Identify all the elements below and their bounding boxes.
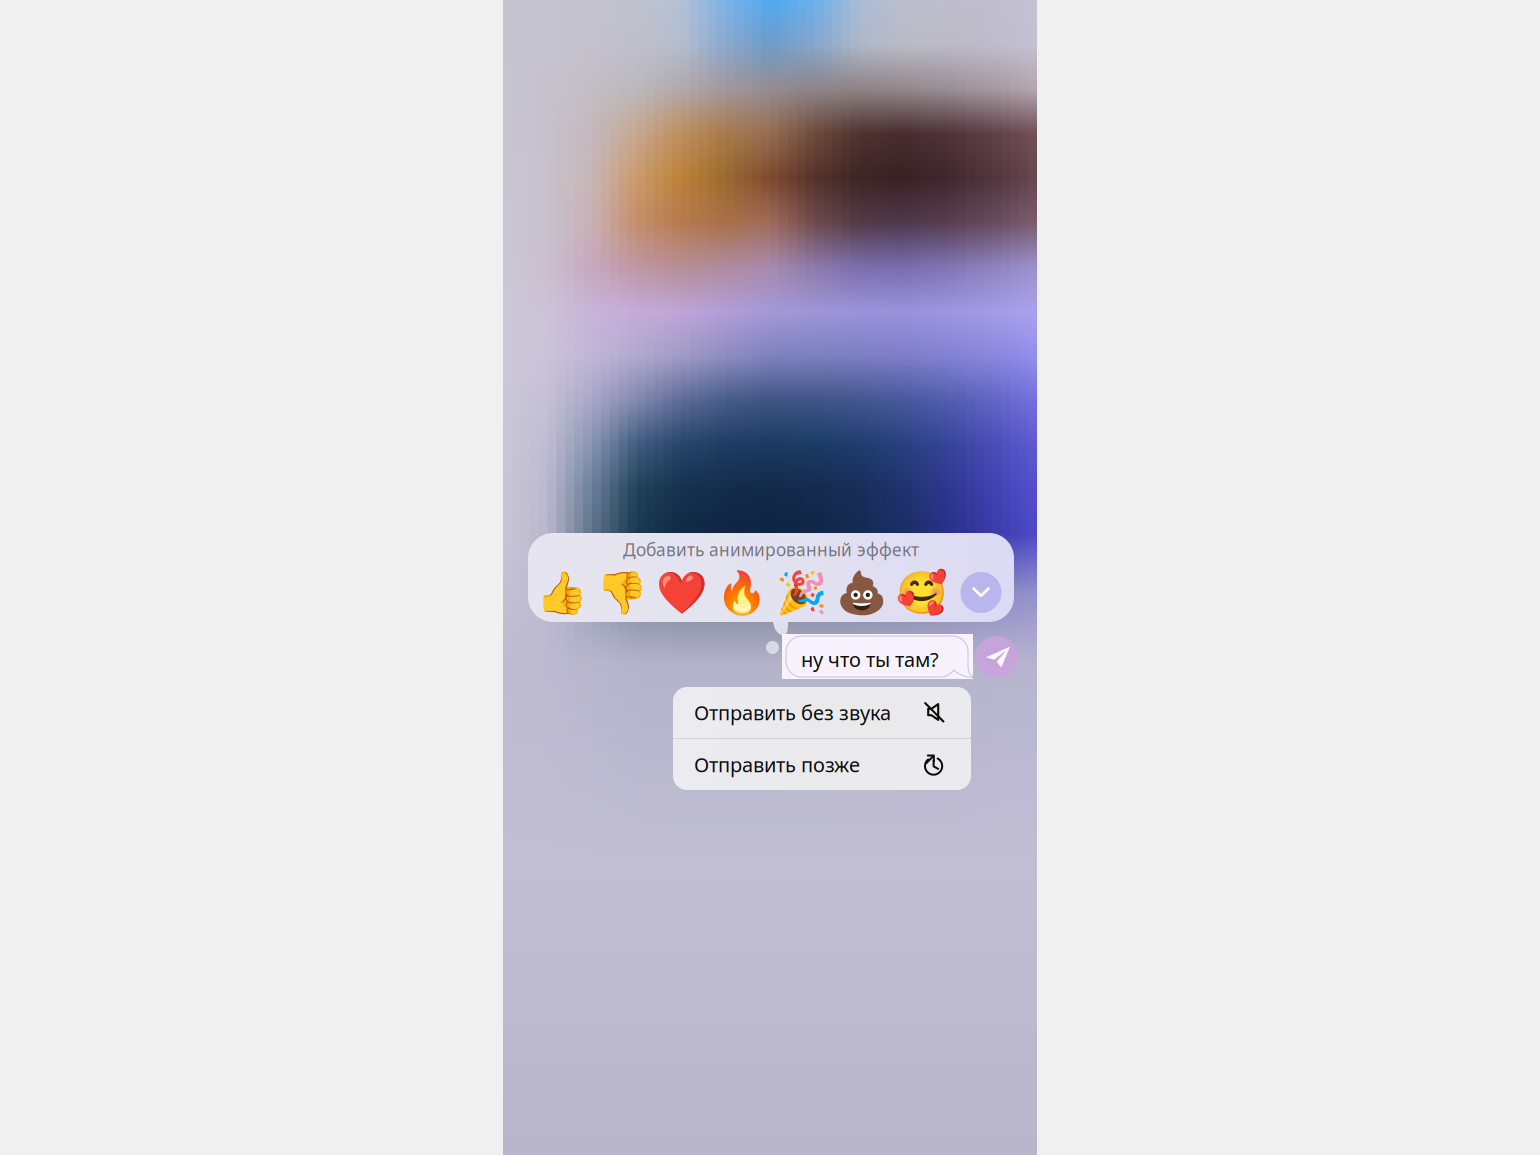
staticText: 🎉: [775, 569, 826, 616]
staticText: Добавить анимированный эффект: [623, 538, 919, 561]
staticText: Отправить позже: [694, 751, 860, 778]
staticText: Отправить без звука: [694, 699, 891, 726]
button[interactable]: Реакция: [831, 565, 891, 619]
staticText: 👎: [595, 569, 646, 616]
staticText: 🔥: [715, 569, 766, 616]
button[interactable]: Реакция: [771, 565, 831, 619]
staticText: 💩: [835, 569, 886, 616]
button[interactable]: Показать больше эффектов: [951, 565, 1011, 619]
button[interactable]: Отправить без звука: [673, 687, 971, 738]
button[interactable]: Реакция: [531, 565, 591, 619]
staticText: 👍: [535, 569, 586, 616]
staticText: ❤️: [655, 569, 706, 616]
button[interactable]: Реакция: [891, 565, 951, 619]
staticText: ну что ты там?: [801, 646, 939, 673]
button[interactable]: Отправить позже: [673, 739, 971, 790]
button[interactable]: Отправить: [975, 635, 1019, 679]
button[interactable]: Реакция: [591, 565, 651, 619]
button[interactable]: Реакция: [711, 565, 771, 619]
staticText: 🥰: [895, 569, 946, 616]
button[interactable]: Реакция: [651, 565, 711, 619]
